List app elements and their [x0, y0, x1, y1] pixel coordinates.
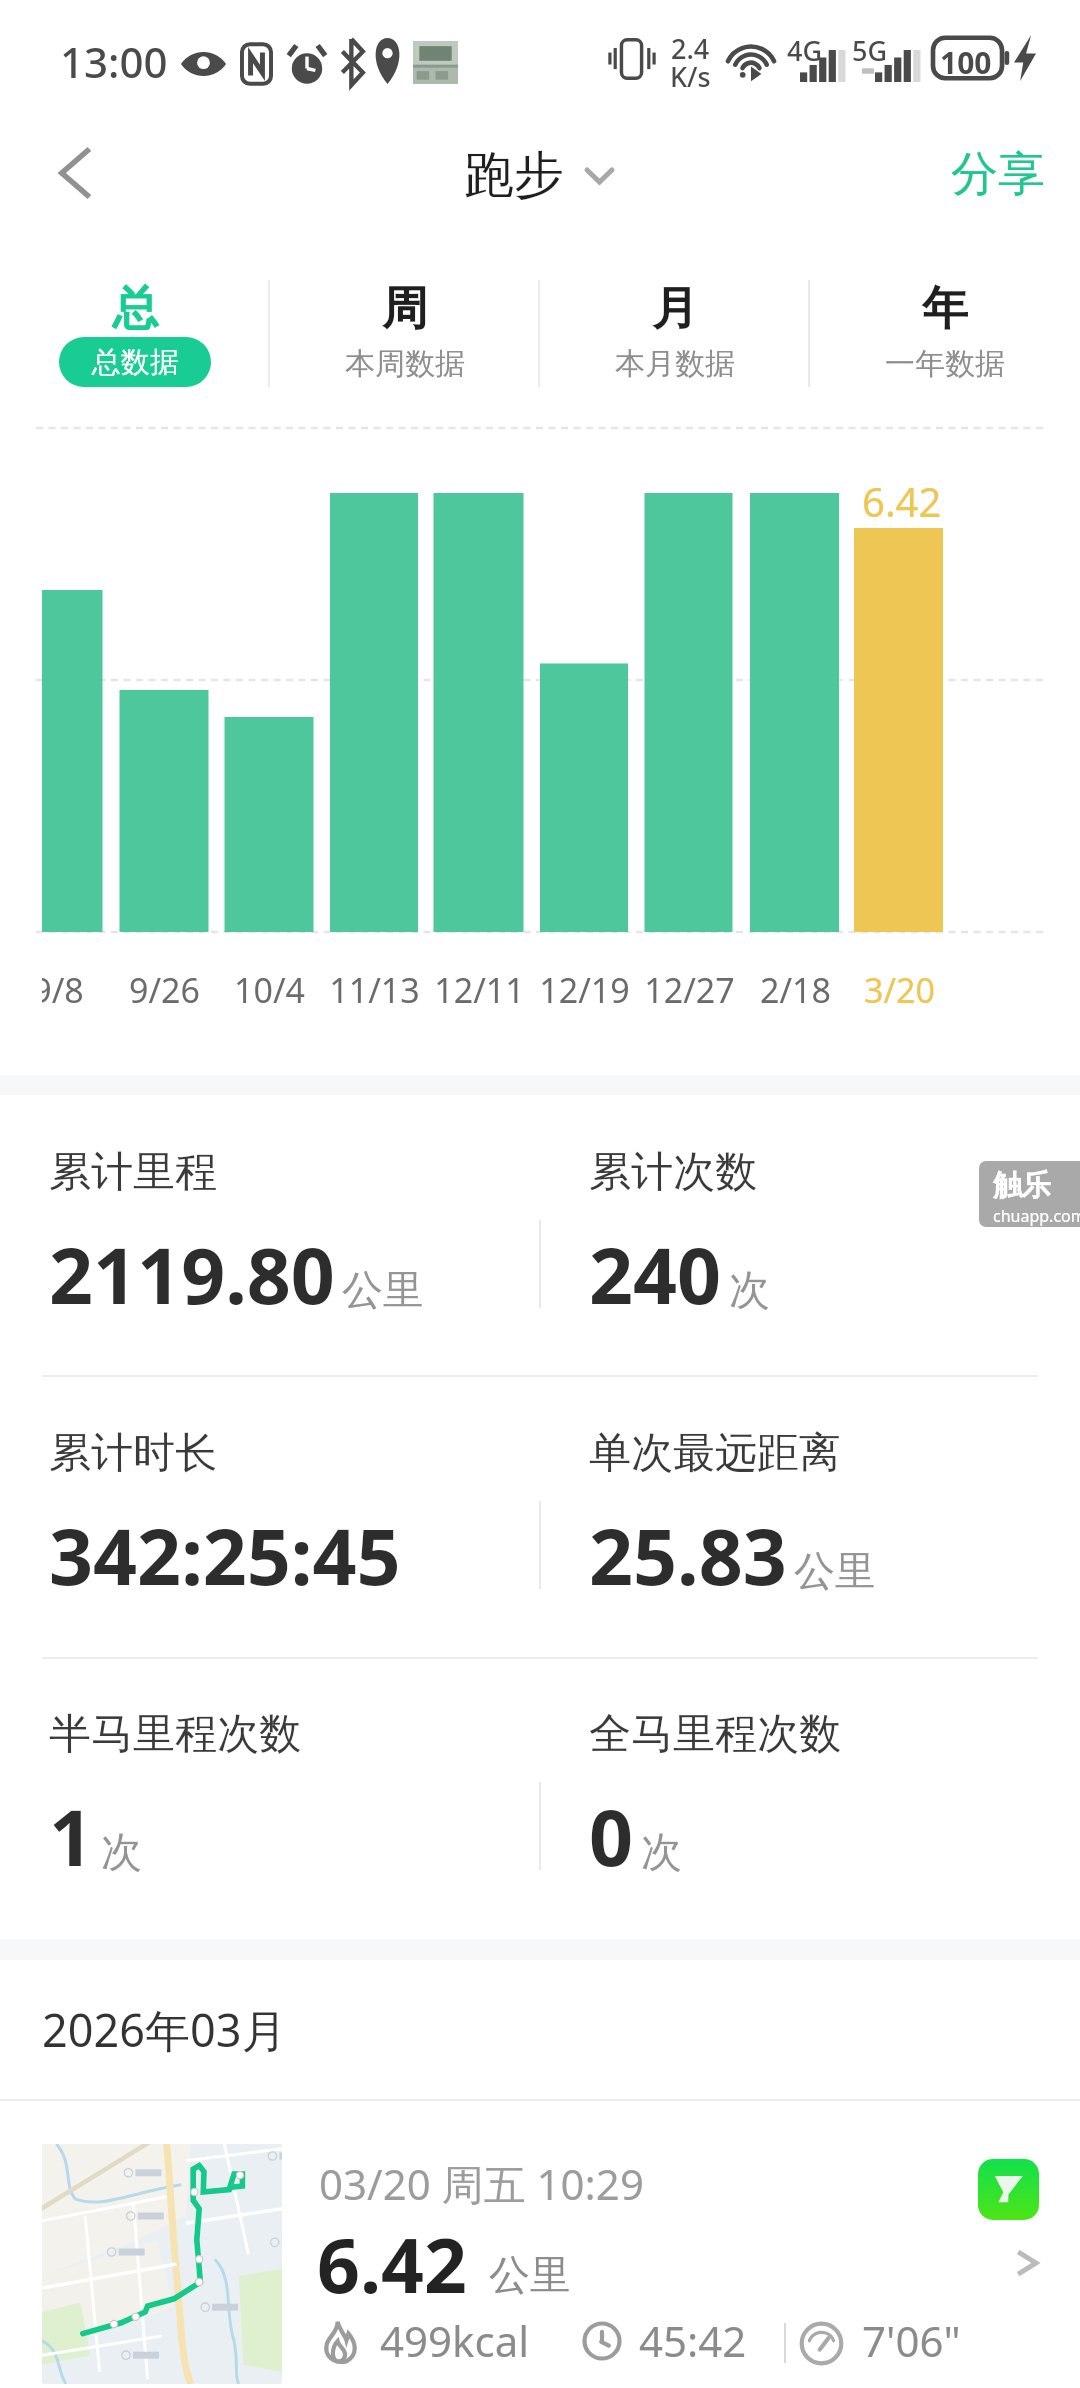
button[interactable]: App	[978, 2159, 1039, 2220]
staticText: 12/19	[539, 967, 630, 1013]
other: Open run details	[1016, 2251, 1038, 2275]
staticText: 触乐	[993, 1167, 1051, 1204]
staticText: 本月数据	[615, 345, 735, 383]
button[interactable]: 分享	[925, 131, 1071, 218]
staticText: 5G	[852, 32, 888, 69]
button[interactable]: 年	[810, 250, 1080, 408]
staticText: 公里	[342, 1265, 424, 1317]
staticText: 12/27	[644, 967, 735, 1013]
staticText: 7'06"	[862, 2312, 961, 2369]
staticText: 公里	[489, 2250, 571, 2302]
button[interactable]: 总	[0, 250, 270, 408]
staticText: 累计次数	[589, 1146, 757, 1199]
staticText: 240	[589, 1222, 722, 1327]
button[interactable]: 周	[270, 250, 540, 408]
staticText: 0	[589, 1784, 634, 1889]
staticText: 本周数据	[345, 345, 465, 383]
button[interactable]: Back	[14, 113, 136, 233]
staticText: 月	[652, 280, 698, 338]
staticText: 2026年03月	[42, 1999, 287, 2060]
staticText: 分享	[951, 145, 1045, 204]
staticText: 次	[641, 1827, 682, 1879]
staticText: 1	[49, 1784, 94, 1889]
staticText: 半马里程次数	[49, 1708, 301, 1761]
button[interactable]: 月	[540, 250, 810, 408]
staticText: K/s	[670, 58, 711, 95]
staticText: 9/26	[129, 967, 200, 1013]
staticText: 累计时长	[49, 1427, 217, 1480]
staticText: 6.42	[862, 474, 942, 528]
staticText: 4G	[787, 32, 823, 69]
staticText: 100	[940, 42, 992, 83]
staticText: 年	[922, 280, 968, 338]
staticText: 总数据	[92, 344, 179, 381]
staticText: 次	[729, 1265, 770, 1317]
staticText: 25.83	[589, 1503, 787, 1608]
staticText: 499kcal	[380, 2312, 530, 2369]
staticText: 6.42	[317, 2213, 467, 2315]
staticText: 全马里程次数	[589, 1708, 841, 1761]
staticText: 9/8	[42, 967, 84, 1013]
staticText: 342:25:45	[49, 1503, 401, 1608]
staticText: 11/13	[329, 967, 420, 1013]
staticText: 3/20	[864, 967, 935, 1013]
staticText: 10/4	[234, 967, 305, 1013]
button[interactable]: 跑步	[440, 136, 637, 215]
staticText: 公里	[794, 1546, 876, 1598]
staticText: 12/11	[434, 967, 525, 1013]
staticText: 2.4	[671, 30, 710, 67]
staticText: 总	[112, 280, 158, 338]
staticText: 次	[101, 1827, 142, 1879]
staticText: 2119.80	[49, 1222, 335, 1327]
staticText: 13:00	[60, 33, 168, 90]
staticText: 2/18	[760, 967, 831, 1013]
staticText: 跑步	[464, 144, 564, 207]
staticText: 03/20 周五 10:29	[319, 2155, 644, 2212]
staticText: 45:42	[639, 2312, 747, 2369]
staticText: 一年数据	[885, 345, 1005, 383]
staticText: chuapp.com	[993, 1205, 1080, 1227]
staticText: 单次最远距离	[589, 1427, 841, 1480]
button[interactable]: 03/20 周五 10:29 6.42 公里	[0, 2101, 1080, 2388]
staticText: 周	[382, 280, 428, 338]
staticText: 累计里程	[49, 1146, 217, 1199]
